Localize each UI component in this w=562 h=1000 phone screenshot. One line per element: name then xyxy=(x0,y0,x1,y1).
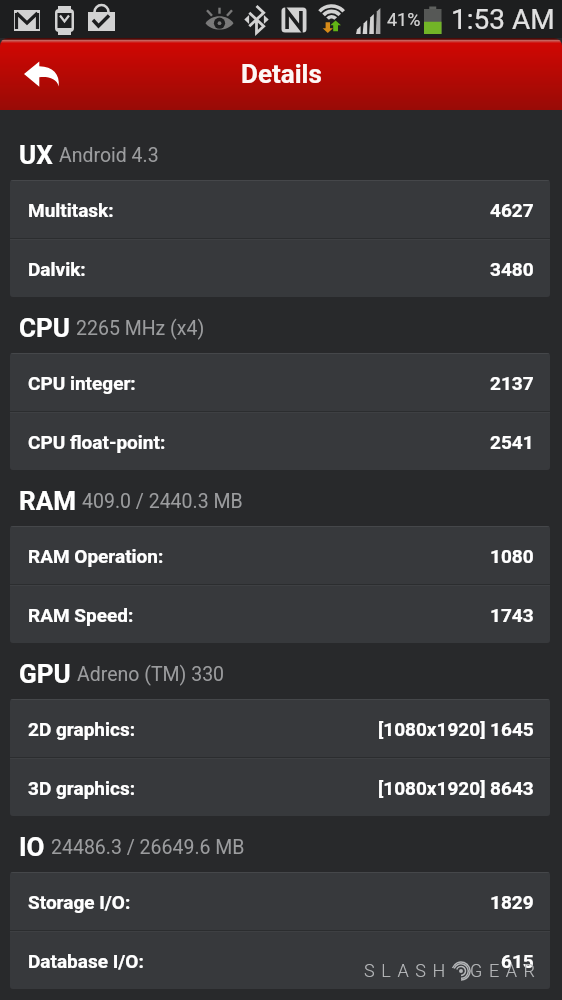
staticText: CPU xyxy=(19,313,70,343)
staticText: 1743 xyxy=(490,604,534,626)
staticText: CPU float-point: xyxy=(28,431,166,453)
staticText: 615 xyxy=(501,950,534,972)
staticText: RAM xyxy=(19,486,76,516)
staticText: UX xyxy=(19,140,53,170)
button[interactable]: Dalvik: xyxy=(10,240,550,297)
staticText: Adreno (TM) 330 xyxy=(77,663,225,686)
button[interactable]: RAM Speed: xyxy=(10,586,550,643)
staticText: [1080x1920] 1645 xyxy=(378,718,534,740)
button[interactable]: CPU float-point: xyxy=(10,413,550,470)
button[interactable]: Storage I/O: xyxy=(10,873,550,930)
staticText: Storage I/O: xyxy=(28,891,131,913)
staticText: RAM Operation: xyxy=(28,545,164,567)
staticText: Multitask: xyxy=(28,199,114,221)
staticText: Details xyxy=(241,59,322,89)
staticText: RAM Speed: xyxy=(28,604,134,626)
button[interactable]: Multitask: xyxy=(10,181,550,238)
staticText: 24486.3 / 26649.6 MB xyxy=(51,836,245,859)
staticText: 41% xyxy=(387,9,421,30)
staticText: 1:53 AM xyxy=(451,3,555,36)
staticText: 2137 xyxy=(490,372,534,394)
staticText: IO xyxy=(19,832,45,862)
staticText: 1080 xyxy=(490,545,534,567)
button[interactable]: Back xyxy=(11,43,73,105)
button[interactable]: 3D graphics: xyxy=(10,759,550,816)
staticText: GEAR xyxy=(470,960,542,981)
button[interactable]: RAM Operation: xyxy=(10,527,550,584)
staticText: [1080x1920] 8643 xyxy=(378,777,534,799)
staticText: GPU xyxy=(19,659,71,689)
button[interactable]: 2D graphics: xyxy=(10,700,550,757)
staticText: 3D graphics: xyxy=(28,777,136,799)
staticText: CPU integer: xyxy=(28,372,136,394)
staticText: 3480 xyxy=(490,258,534,280)
staticText: 2D graphics: xyxy=(28,718,136,740)
staticText: Dalvik: xyxy=(28,258,86,280)
staticText: 4627 xyxy=(490,199,534,221)
staticText: 1829 xyxy=(490,891,534,913)
staticText: 409.0 / 2440.3 MB xyxy=(82,490,243,513)
button[interactable]: CPU integer: xyxy=(10,354,550,411)
staticText: 2265 MHz (x4) xyxy=(76,317,205,340)
staticText: Database I/O: xyxy=(28,950,144,972)
staticText: Android 4.3 xyxy=(59,144,159,167)
staticText: 2541 xyxy=(490,431,534,453)
button[interactable]: Database I/O: xyxy=(10,932,550,989)
staticText: SLASH xyxy=(364,960,452,981)
